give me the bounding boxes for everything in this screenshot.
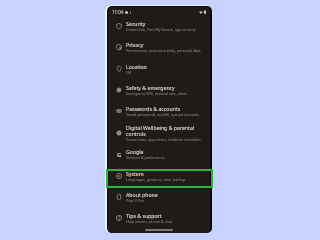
button[interactable]: System xyxy=(108,165,210,186)
staticText: 11:04 xyxy=(112,9,124,15)
staticText: Saved passwords, autofill, synced accoun… xyxy=(126,112,200,117)
button[interactable]: Security xyxy=(108,15,210,36)
button[interactable]: Location xyxy=(108,58,210,79)
button[interactable]: Privacy xyxy=(108,36,210,57)
staticText: Security xyxy=(126,20,146,27)
staticText: Screen time, app timers, bedtime schedul… xyxy=(126,137,201,142)
staticText: Permissions, account activity, personal … xyxy=(126,48,201,53)
staticText: System xyxy=(126,170,144,177)
staticText: Google xyxy=(126,148,144,155)
button[interactable]: Safety & emergency xyxy=(108,79,210,100)
staticText: Off xyxy=(126,70,132,75)
button[interactable]: Passwords & accounts xyxy=(108,100,210,121)
staticText: Safety & emergency xyxy=(126,84,175,91)
staticText: G xyxy=(117,151,122,157)
staticText: Privacy xyxy=(126,41,144,48)
staticText: Digital Wellbeing & parental controls xyxy=(126,124,210,137)
staticText: Pixel 6 Pro xyxy=(126,198,144,203)
staticText: Services & preferences xyxy=(126,155,165,160)
staticText: Languages, gestures, time, backup xyxy=(126,177,186,182)
button[interactable]: About phone xyxy=(108,186,210,207)
staticText: Location xyxy=(126,63,147,70)
button[interactable]: Tips & support xyxy=(108,207,210,228)
staticText: Help articles, phone & chat xyxy=(126,219,172,224)
button[interactable]: G xyxy=(108,143,210,164)
staticText: Emergency SOS, medical info, alerts xyxy=(126,91,188,96)
staticText: About phone xyxy=(126,191,158,198)
staticText: Tips & support xyxy=(126,212,162,219)
staticText: Passwords & accounts xyxy=(126,105,181,112)
staticText: Screen lock, Find My Device, app securit… xyxy=(126,27,196,32)
button[interactable]: Digital Wellbeing & parental controls xyxy=(108,122,210,143)
